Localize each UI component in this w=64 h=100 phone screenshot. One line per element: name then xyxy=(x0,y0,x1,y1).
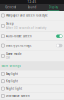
button[interactable]: Sound xyxy=(21,4,43,11)
button[interactable]: Night light xyxy=(0,85,64,92)
staticText: More settings xyxy=(1,64,20,68)
staticText: Wallpaper and screen lock style xyxy=(6,14,48,17)
staticText: Easy light xyxy=(6,72,18,76)
button[interactable]: Sleep xyxy=(0,20,64,31)
staticText: Interactive screen xyxy=(6,94,30,98)
staticText: General xyxy=(5,5,16,9)
staticText: Night light xyxy=(6,87,22,90)
staticText: Auto-rotate screen xyxy=(6,34,32,38)
button[interactable]: Easy light xyxy=(0,70,64,77)
staticText: After 30 seconds of inactivity xyxy=(6,26,46,30)
button[interactable]: Battery percentage xyxy=(0,41,64,50)
staticText: 12:45 xyxy=(27,0,36,4)
staticText: Off xyxy=(6,56,10,60)
button[interactable]: Game mode xyxy=(0,50,64,61)
staticText: Key light xyxy=(6,79,18,83)
button[interactable]: Display xyxy=(43,4,64,11)
staticText: Sound xyxy=(27,5,36,9)
staticText: Battery percentage xyxy=(6,44,32,47)
button[interactable]: General xyxy=(0,4,21,11)
button[interactable]: Wallpaper and screen lock style xyxy=(0,11,64,20)
button[interactable]: Interactive screen xyxy=(0,92,64,99)
button[interactable]: Key light xyxy=(0,78,64,85)
button[interactable]: Auto-rotate screen xyxy=(0,32,64,41)
staticText: Display xyxy=(49,5,58,9)
staticText: Sleep xyxy=(6,22,14,26)
staticText: Game mode xyxy=(6,52,22,56)
